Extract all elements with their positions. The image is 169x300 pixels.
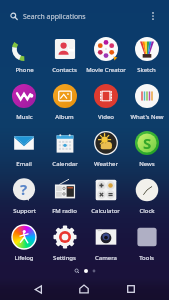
button[interactable]: S xyxy=(126,129,167,176)
staticText: Contacts xyxy=(52,66,77,74)
staticText: ? xyxy=(20,179,28,199)
staticText: S xyxy=(143,133,152,153)
button[interactable]: Music xyxy=(4,82,44,129)
staticText: Settings xyxy=(53,254,76,262)
staticText: What's New xyxy=(130,113,164,121)
button[interactable]: Album xyxy=(44,82,85,129)
button[interactable]: Calculator xyxy=(85,176,126,223)
staticText: Camera xyxy=(95,254,117,262)
button[interactable]: What's New xyxy=(126,82,167,129)
staticText: Weather xyxy=(94,160,118,168)
button[interactable]: Settings xyxy=(44,223,85,270)
button[interactable]: Sketch xyxy=(126,35,167,82)
staticText: Phone xyxy=(15,66,34,74)
button[interactable]: Clock xyxy=(126,176,167,223)
button[interactable]: Contacts xyxy=(44,35,85,82)
button[interactable]: Video xyxy=(85,82,126,129)
button[interactable]: Email xyxy=(4,129,44,176)
staticText: Lifelog xyxy=(14,254,34,262)
staticText: Music xyxy=(16,113,33,121)
button[interactable]: Tools xyxy=(126,223,167,270)
button[interactable]: FM radio xyxy=(44,176,85,223)
button[interactable]: Phone xyxy=(4,35,44,82)
staticText: Email xyxy=(16,160,32,168)
staticText: Calendar xyxy=(52,160,78,168)
staticText: Calculator xyxy=(91,207,120,215)
staticText: Support xyxy=(13,207,36,215)
button[interactable]: Calendar xyxy=(44,129,85,176)
staticText: Album xyxy=(55,113,74,121)
staticText: News xyxy=(139,160,155,168)
button[interactable]: Weather xyxy=(85,129,126,176)
staticText: Video xyxy=(98,113,114,121)
button[interactable]: Movie Creator xyxy=(85,35,126,82)
button[interactable]: ? xyxy=(4,176,44,223)
button[interactable]: Lifelog xyxy=(4,223,44,270)
staticText: Movie Creator xyxy=(86,66,126,74)
staticText: Tools xyxy=(139,254,154,262)
button[interactable]: Search applications xyxy=(6,7,88,25)
staticText: FM radio xyxy=(52,207,77,215)
staticText: Clock xyxy=(139,207,155,215)
button[interactable]: Home xyxy=(73,278,95,300)
button[interactable]: Camera xyxy=(85,223,126,270)
staticText: Search applications xyxy=(23,12,86,21)
button[interactable]: Recent apps xyxy=(120,278,142,300)
button[interactable]: Back xyxy=(27,278,49,300)
button[interactable]: More options xyxy=(145,8,161,24)
staticText: Sketch xyxy=(137,66,156,74)
